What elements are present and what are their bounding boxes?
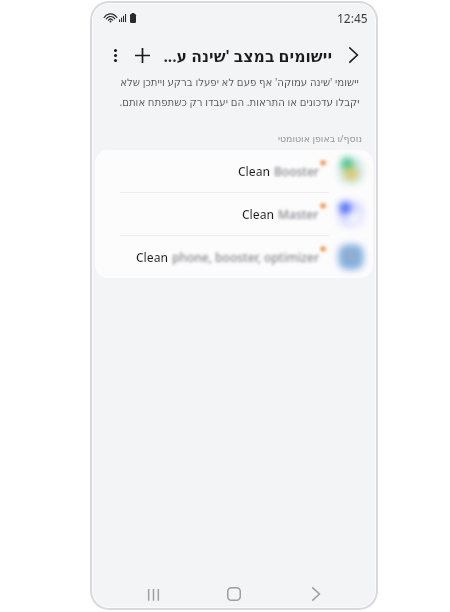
staticText: Clean	[238, 163, 271, 179]
button[interactable]: Back	[294, 581, 338, 607]
button[interactable]: More options	[100, 40, 130, 70]
staticText: Clean	[242, 206, 275, 222]
staticText: יישומים במצב 'שינה ע...	[163, 45, 332, 66]
staticText: נוסף/ו באופן אוטומטי	[277, 132, 362, 145]
staticText: Master	[278, 206, 319, 222]
staticText: Booster	[274, 163, 319, 179]
button[interactable]: Clean	[95, 236, 373, 278]
staticText: Clean	[136, 249, 169, 265]
button[interactable]: Add	[127, 40, 157, 70]
button[interactable]: Clean	[95, 150, 373, 192]
button[interactable]: Back	[338, 40, 368, 70]
button[interactable]: Recent apps	[131, 581, 175, 607]
staticText: יישומי 'שינה עמוקה' אף פעם לא יפעלו ברקע…	[119, 75, 360, 109]
button[interactable]: Clean	[95, 193, 373, 235]
button[interactable]: Home	[212, 581, 256, 607]
staticText: 12:45	[337, 10, 368, 26]
staticText: phone, booster, optimizer	[172, 249, 319, 265]
